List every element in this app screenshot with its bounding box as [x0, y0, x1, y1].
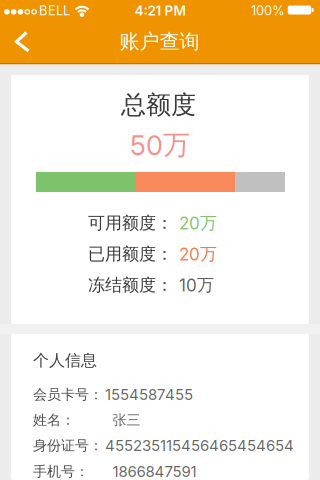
- staticText: 可用额度：: [88, 212, 173, 234]
- staticText: 个人信息: [33, 350, 97, 371]
- staticText: 10万: [179, 274, 214, 296]
- staticText: 姓名：: [33, 411, 75, 429]
- staticText: 张三: [112, 411, 140, 429]
- staticText: 4:21 PM: [134, 2, 185, 19]
- staticText: 1866847591: [112, 462, 196, 480]
- staticText: 20万: [179, 212, 217, 234]
- staticText: 身份证号：: [33, 437, 103, 454]
- staticText: 1554587455: [105, 385, 193, 403]
- staticText: 50万: [130, 128, 190, 162]
- staticText: 总额度: [121, 89, 196, 121]
- staticText: 已用额度：: [88, 243, 173, 265]
- staticText: 会员卡号：: [33, 386, 103, 403]
- staticText: 100%: [251, 3, 285, 18]
- staticText: 账户查询: [119, 29, 199, 54]
- staticText: 455235115456465454654: [105, 436, 294, 454]
- staticText: BELL: [39, 3, 70, 18]
- staticText: 冻结额度：: [88, 274, 173, 296]
- staticText: 20万: [179, 243, 217, 265]
- staticText: 手机号：: [33, 463, 89, 480]
- button[interactable]: [0, 22, 44, 63]
